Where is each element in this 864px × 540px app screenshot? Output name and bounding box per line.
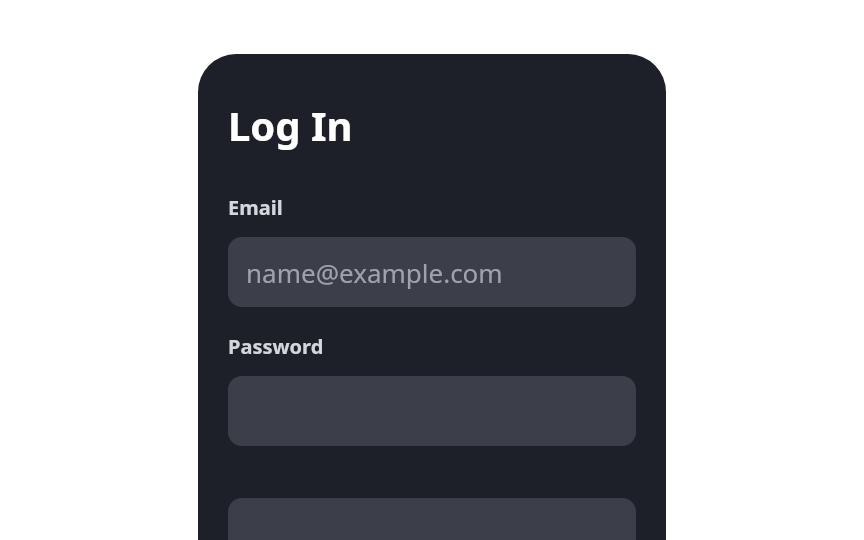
- staticText: Password: [228, 333, 324, 360]
- staticText: Email: [228, 194, 283, 221]
- staticText: Log In: [228, 98, 353, 152]
- button[interactable]: Email input: [228, 237, 636, 307]
- staticText: name@example.com: [246, 255, 503, 290]
